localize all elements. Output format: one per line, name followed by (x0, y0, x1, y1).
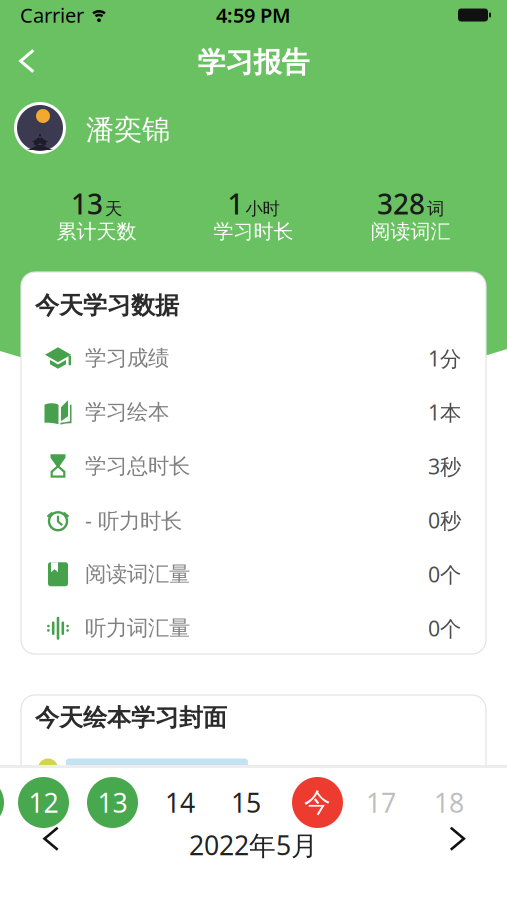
button[interactable]: 18 (423, 777, 474, 828)
staticText: 0个 (428, 560, 461, 588)
staticText: 4:59 PM (216, 2, 291, 28)
staticText: 1分 (428, 344, 461, 372)
button[interactable]: 17 (355, 777, 406, 828)
staticText: 天 (105, 198, 122, 219)
staticText: 13 (97, 785, 127, 820)
staticText: 15 (231, 785, 261, 820)
staticText: 学习绘本 (85, 399, 169, 425)
staticText: 词 (427, 198, 444, 219)
staticText: - 听力时长 (85, 506, 182, 534)
button[interactable]: Previous month (0, 834, 60, 866)
staticText: 学习成绩 (85, 345, 169, 371)
staticText: 小时 (245, 198, 279, 219)
staticText: 学习报告 (197, 45, 309, 80)
staticText: 听力词汇量 (85, 615, 190, 641)
staticText: 阅读词汇 (370, 219, 450, 244)
staticText: 1本 (428, 398, 461, 426)
staticText: 学习总时长 (85, 453, 190, 479)
button[interactable]: 15 (220, 777, 271, 828)
staticText: 阅读词汇量 (85, 561, 190, 587)
staticText: 今 (304, 786, 331, 819)
staticText: 学习时长 (213, 219, 293, 244)
button[interactable]: Next month (451, 834, 507, 866)
staticText: 今天绘本学习封面 (35, 703, 227, 732)
staticText: 17 (366, 785, 396, 820)
button[interactable]: 今 (292, 777, 343, 828)
staticText: 0秒 (428, 506, 461, 534)
staticText: 328 (377, 185, 425, 222)
staticText: 2022年5月 (189, 827, 318, 863)
staticText: 今天学习数据 (35, 291, 179, 320)
staticText: 0个 (428, 614, 461, 642)
staticText: 3秒 (428, 452, 461, 480)
staticText: Carrier (20, 2, 84, 28)
staticText: 18 (434, 785, 464, 820)
staticText: 潘奕锦 (86, 113, 170, 147)
staticText: 12 (28, 785, 58, 820)
button[interactable]: Back (0, 44, 36, 81)
button[interactable]: 14 (154, 777, 205, 828)
staticText: 1 (227, 185, 243, 222)
button[interactable]: 12 (18, 777, 69, 828)
staticText: 14 (165, 785, 195, 820)
button[interactable]: 13 (87, 777, 138, 828)
staticText: 累计天数 (56, 219, 136, 244)
staticText: 13 (71, 185, 103, 222)
